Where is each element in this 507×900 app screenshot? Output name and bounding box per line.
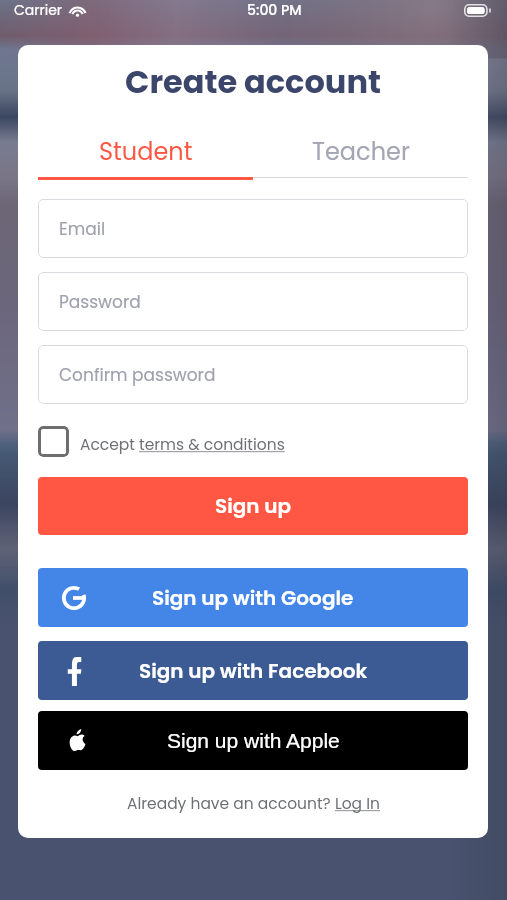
staticText: Log In: [335, 793, 380, 815]
button[interactable]: Accept: [38, 426, 285, 457]
button[interactable]: Sign up with Apple: [38, 711, 468, 770]
button[interactable]: Student: [38, 135, 253, 169]
button[interactable]: Sign up: [38, 477, 468, 535]
staticText: Email: [59, 217, 106, 241]
staticText: Teacher: [312, 135, 410, 169]
staticText: Create account: [18, 59, 488, 104]
staticText: Sign up with Apple: [167, 729, 340, 752]
staticText: Confirm password: [59, 363, 216, 387]
button[interactable]: Sign up with Facebook: [38, 641, 468, 700]
button[interactable]: Email: [38, 199, 468, 258]
staticText: Accept: [80, 434, 135, 456]
button[interactable]: Sign up with Google: [38, 568, 468, 627]
staticText: terms & conditions: [139, 434, 285, 456]
staticText: Already have an account?: [127, 793, 335, 815]
button[interactable]: Log In: [335, 793, 380, 815]
staticText: Student: [99, 135, 193, 169]
staticText: Sign up: [215, 492, 292, 520]
staticText: Carrier: [14, 0, 63, 20]
button[interactable]: Teacher: [253, 135, 468, 169]
button[interactable]: Confirm password: [38, 345, 468, 404]
button[interactable]: Password: [38, 272, 468, 331]
staticText: Password: [59, 290, 141, 314]
staticText: 5:00 PM: [247, 0, 302, 20]
staticText: Sign up with Google: [152, 584, 354, 612]
staticText: Sign up with Facebook: [139, 657, 368, 685]
